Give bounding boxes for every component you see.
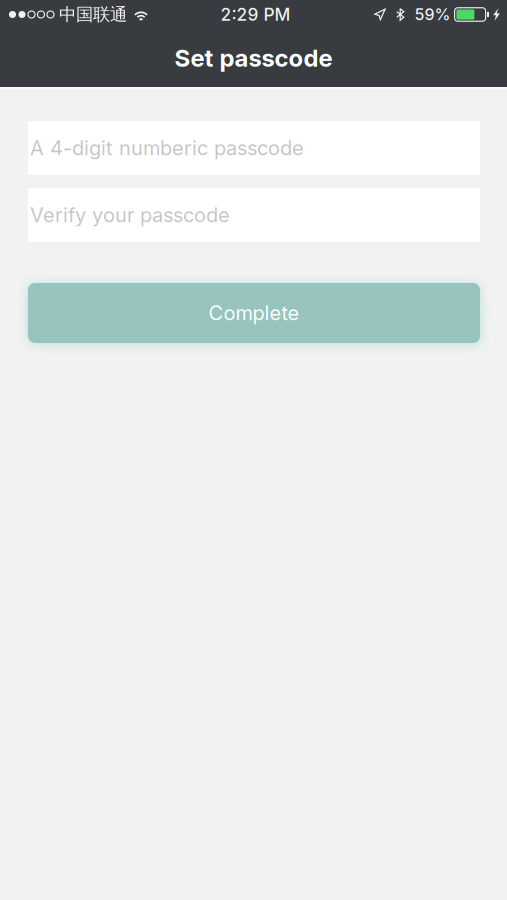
- staticText: Set passcode: [174, 43, 332, 72]
- staticText: 中国联通: [59, 4, 127, 25]
- staticText: Verify your passcode: [30, 203, 230, 227]
- button[interactable]: Complete: [28, 283, 480, 343]
- staticText: 2:29 PM: [220, 4, 290, 25]
- staticText: 59%: [415, 5, 451, 24]
- button[interactable]: A 4-digit numberic passcode: [28, 121, 480, 175]
- button[interactable]: Verify your passcode: [28, 188, 480, 242]
- staticText: A 4-digit numberic passcode: [30, 136, 304, 160]
- staticText: Complete: [208, 301, 299, 325]
